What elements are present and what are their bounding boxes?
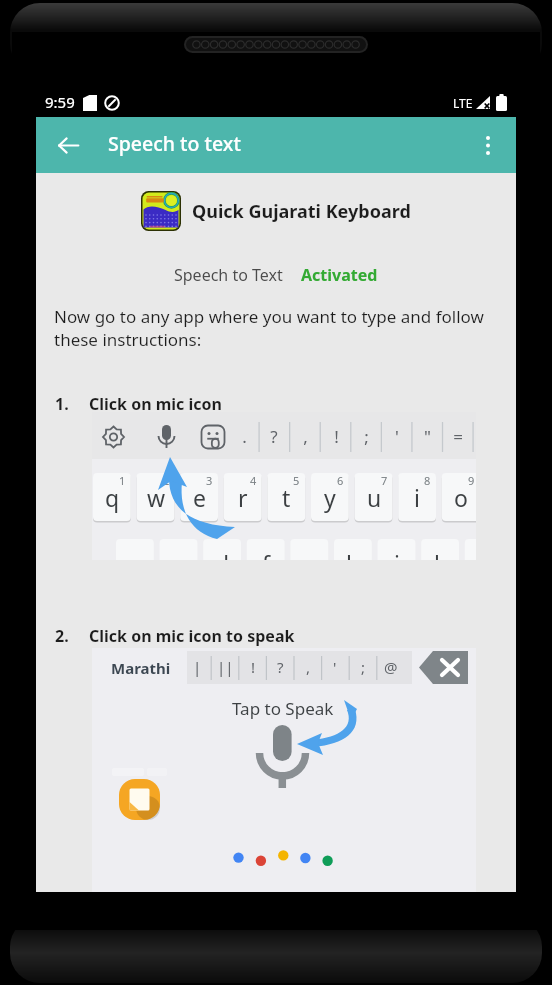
staticText: 2 (163, 473, 170, 488)
staticText: LTE (453, 95, 473, 111)
staticText: 5 (293, 473, 300, 488)
staticText: 9 (468, 473, 475, 488)
staticText: ? (277, 657, 284, 677)
staticText: d (215, 548, 230, 560)
staticText: 7 (381, 473, 388, 488)
staticText: ; (364, 425, 369, 448)
button[interactable]: More options (464, 121, 512, 169)
staticText: t (282, 482, 291, 513)
staticText: 1 (119, 473, 126, 488)
staticText: , (306, 657, 311, 677)
staticText: w (147, 482, 166, 513)
staticText: 3 (206, 473, 213, 488)
staticText: q (105, 482, 120, 513)
staticText: r (238, 482, 248, 513)
staticText: i (414, 482, 420, 513)
button[interactable]: Back (44, 121, 92, 169)
staticText: ! (334, 425, 339, 448)
staticText: 8 (424, 473, 431, 488)
staticText: Click on mic icon (89, 393, 222, 415)
staticText: y (324, 482, 336, 513)
staticText: || (217, 657, 234, 677)
staticText: = (453, 425, 463, 448)
staticText: ! (251, 657, 256, 677)
staticText: 2. (55, 625, 69, 647)
staticText: j (394, 548, 400, 560)
staticText: ; (361, 657, 366, 677)
staticText: Tap to Speak (232, 697, 334, 720)
staticText: e (193, 482, 206, 513)
staticText: | (193, 657, 202, 677)
staticText: " (424, 425, 431, 448)
staticText: . (242, 425, 247, 448)
staticText: Quick Gujarati Keyboard (192, 199, 411, 224)
staticText: Marathi (111, 658, 171, 678)
staticText: h (346, 548, 361, 560)
staticText: @ (384, 657, 398, 677)
staticText: Speech to text (108, 130, 241, 157)
staticText: Activated (301, 264, 378, 286)
staticText: Now go to any app where you want to type… (54, 305, 500, 351)
staticText: ' (333, 657, 337, 677)
staticText: 4 (250, 473, 257, 488)
staticText: u (367, 482, 382, 513)
staticText: 6 (337, 473, 344, 488)
staticText: o (454, 482, 468, 513)
staticText: 9:59 (45, 92, 75, 112)
staticText: 1. (55, 393, 69, 415)
staticText: f (262, 548, 270, 560)
staticText: Speech to Text (174, 264, 283, 286)
staticText: ? (270, 425, 278, 448)
staticText: ' (395, 425, 399, 448)
staticText: , (303, 425, 308, 448)
staticText: k (434, 548, 447, 560)
staticText: Click on mic icon to speak (89, 625, 295, 647)
